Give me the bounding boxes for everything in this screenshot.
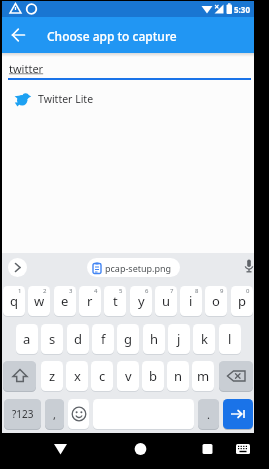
button[interactable]: ?123 bbox=[4, 399, 41, 429]
button[interactable]: x bbox=[66, 361, 88, 391]
staticText: i bbox=[189, 292, 193, 310]
staticText: c bbox=[99, 367, 106, 385]
staticText: z bbox=[49, 367, 56, 385]
button[interactable] bbox=[223, 399, 253, 429]
staticText: q bbox=[10, 292, 18, 310]
button[interactable] bbox=[195, 437, 221, 463]
staticText: h bbox=[150, 330, 159, 348]
staticText: pcap-setup.png bbox=[105, 262, 172, 274]
staticText: , bbox=[53, 407, 56, 422]
button[interactable]: e bbox=[54, 286, 76, 316]
staticText: r bbox=[87, 292, 93, 310]
button[interactable]: k bbox=[193, 324, 215, 354]
button[interactable]: g bbox=[117, 324, 139, 354]
staticText: j bbox=[177, 330, 181, 348]
staticText: m bbox=[197, 367, 210, 385]
button[interactable]: q bbox=[3, 286, 25, 316]
staticText: twitter bbox=[9, 61, 44, 76]
button[interactable]: c bbox=[91, 361, 113, 391]
button[interactable] bbox=[8, 25, 28, 45]
button[interactable]: l bbox=[219, 324, 241, 354]
staticText: v bbox=[125, 367, 132, 385]
staticText: n bbox=[174, 367, 183, 385]
button[interactable]: u bbox=[155, 286, 177, 316]
staticText: d bbox=[74, 330, 82, 348]
button[interactable]: v bbox=[117, 361, 139, 391]
button[interactable] bbox=[234, 441, 254, 461]
staticText: a bbox=[23, 330, 31, 348]
staticText: Twitter Lite bbox=[38, 92, 94, 106]
staticText: y bbox=[138, 292, 145, 310]
staticText: t bbox=[113, 292, 118, 310]
button[interactable] bbox=[8, 258, 27, 277]
staticText: 8 bbox=[195, 287, 199, 295]
button[interactable]: i bbox=[180, 286, 202, 316]
staticText: g bbox=[124, 330, 132, 348]
button[interactable]: w bbox=[28, 286, 50, 316]
button[interactable]: t bbox=[104, 286, 126, 316]
staticText: 1 bbox=[18, 287, 22, 295]
button[interactable]: y bbox=[130, 286, 152, 316]
staticText: Choose app to capture bbox=[47, 28, 177, 44]
staticText: . bbox=[207, 407, 210, 422]
staticText: 9 bbox=[220, 287, 224, 295]
staticText: 5:30 bbox=[234, 4, 250, 15]
staticText: 6 bbox=[145, 287, 149, 295]
button[interactable]: m bbox=[192, 361, 214, 391]
staticText: p bbox=[238, 292, 246, 310]
button[interactable] bbox=[128, 437, 154, 463]
staticText: 0 bbox=[246, 287, 250, 295]
button[interactable]: h bbox=[143, 324, 165, 354]
staticText: u bbox=[162, 292, 171, 310]
staticText: 7 bbox=[170, 287, 174, 295]
button[interactable]: pcap-setup.png bbox=[92, 258, 172, 277]
button[interactable]: r bbox=[79, 286, 101, 316]
button[interactable]: d bbox=[67, 324, 89, 354]
button[interactable] bbox=[48, 437, 74, 463]
button[interactable]: z bbox=[41, 361, 63, 391]
staticText: e bbox=[61, 292, 69, 310]
staticText: l bbox=[228, 330, 232, 348]
button[interactable]: p bbox=[231, 286, 253, 316]
staticText: s bbox=[49, 330, 56, 348]
button[interactable]: f bbox=[92, 324, 114, 354]
staticText: b bbox=[149, 367, 157, 385]
button[interactable]: b bbox=[142, 361, 164, 391]
staticText: 4 bbox=[94, 287, 98, 295]
staticText: x bbox=[74, 367, 81, 385]
button[interactable]: , bbox=[45, 399, 64, 429]
button[interactable]: a bbox=[16, 324, 38, 354]
staticText: o bbox=[212, 292, 220, 310]
staticText: f bbox=[101, 330, 106, 348]
button[interactable]: o bbox=[205, 286, 227, 316]
button[interactable]: n bbox=[167, 361, 189, 391]
staticText: w bbox=[34, 292, 45, 310]
staticText: 5 bbox=[119, 287, 123, 295]
button[interactable]: j bbox=[168, 324, 190, 354]
button[interactable]: Twitter Lite bbox=[2, 88, 254, 110]
staticText: 2 bbox=[43, 287, 47, 295]
button[interactable] bbox=[68, 399, 89, 429]
button[interactable] bbox=[3, 361, 36, 391]
staticText: 3 bbox=[69, 287, 73, 295]
button[interactable]: s bbox=[41, 324, 63, 354]
staticText: k bbox=[201, 330, 208, 348]
button[interactable] bbox=[219, 361, 253, 391]
button[interactable]: . bbox=[198, 399, 219, 429]
staticText: ?123 bbox=[12, 407, 34, 421]
